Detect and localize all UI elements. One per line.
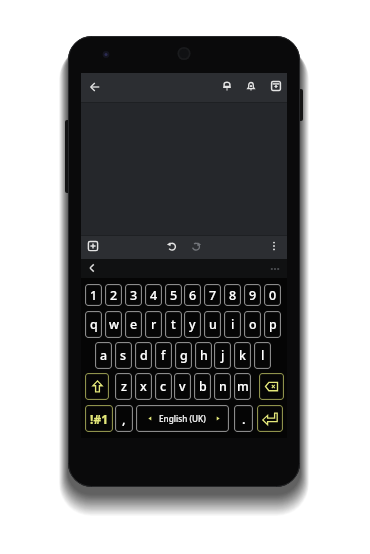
button[interactable]: p <box>264 311 281 338</box>
staticText: y <box>189 316 196 333</box>
button[interactable]: c <box>155 373 172 400</box>
staticText: 6 <box>189 287 197 304</box>
staticText: f <box>161 347 166 364</box>
staticText: k <box>239 347 246 364</box>
staticText: x <box>140 378 147 395</box>
staticText: v <box>179 378 186 395</box>
staticText: e <box>130 316 138 333</box>
button[interactable]: l <box>254 342 271 369</box>
button[interactable]: g <box>175 342 192 369</box>
staticText: n <box>219 378 227 395</box>
staticText: 7 <box>209 287 217 304</box>
staticText: 8 <box>229 287 237 304</box>
button[interactable]: f <box>155 342 172 369</box>
staticText: d <box>140 347 148 364</box>
staticText: j <box>221 347 225 364</box>
staticText: 3 <box>130 287 138 304</box>
button[interactable]: 1 <box>85 284 102 306</box>
staticText: 5 <box>170 287 178 304</box>
button[interactable]: 4 <box>145 284 162 306</box>
button[interactable]: o <box>244 311 261 338</box>
button[interactable]: Enter <box>257 405 283 432</box>
button[interactable]: s <box>115 342 132 369</box>
staticText: English (UK) <box>159 413 206 424</box>
staticText: q <box>90 316 98 333</box>
button[interactable]: Back <box>86 78 104 96</box>
staticText: s <box>120 347 127 364</box>
staticText: , <box>122 410 126 428</box>
button[interactable]: a <box>95 342 112 369</box>
button[interactable]: 8 <box>224 284 241 306</box>
button[interactable]: , <box>115 405 133 432</box>
staticText: 9 <box>249 287 257 304</box>
staticText: u <box>209 316 217 333</box>
button[interactable]: Shift <box>85 373 109 400</box>
staticText: 1 <box>90 287 98 304</box>
button[interactable]: k <box>234 342 251 369</box>
staticText: t <box>171 316 176 333</box>
staticText: p <box>269 316 277 333</box>
button[interactable]: More options <box>266 238 282 254</box>
button[interactable]: English (UK) <box>136 405 229 432</box>
button[interactable]: j <box>214 342 231 369</box>
button[interactable]: 7 <box>204 284 221 306</box>
staticText: !#1 <box>90 411 109 427</box>
button[interactable]: 3 <box>125 284 142 306</box>
button[interactable]: d <box>135 342 152 369</box>
staticText: h <box>200 347 208 364</box>
staticText: 2 <box>110 287 118 304</box>
button[interactable]: Add <box>85 238 101 254</box>
staticText: g <box>180 347 188 364</box>
staticText: l <box>261 347 265 364</box>
button[interactable]: Undo <box>164 238 180 254</box>
button[interactable]: Backspace <box>259 373 284 400</box>
staticText: a <box>100 347 108 364</box>
staticText: . <box>242 410 246 428</box>
button[interactable]: . <box>234 405 253 432</box>
button[interactable]: i <box>224 311 241 338</box>
button[interactable]: q <box>85 311 102 338</box>
button[interactable]: h <box>195 342 212 369</box>
staticText: z <box>121 378 127 395</box>
button[interactable]: Pin <box>219 78 235 94</box>
staticText: m <box>237 378 249 395</box>
staticText: 4 <box>150 287 158 304</box>
button[interactable]: Redo <box>188 238 204 254</box>
button[interactable]: Back <box>85 261 99 275</box>
button[interactable]: 2 <box>105 284 122 306</box>
button[interactable]: u <box>204 311 221 338</box>
button[interactable]: r <box>145 311 162 338</box>
staticText: c <box>160 378 167 395</box>
staticText: i <box>231 316 235 333</box>
staticText: 0 <box>269 287 277 304</box>
button[interactable]: e <box>125 311 142 338</box>
button[interactable]: 6 <box>184 284 201 306</box>
button[interactable]: z <box>115 373 132 400</box>
button[interactable]: !#1 <box>85 405 113 432</box>
staticText: w <box>109 316 119 333</box>
staticText: o <box>249 316 257 333</box>
button[interactable]: x <box>135 373 152 400</box>
button[interactable]: 0 <box>264 284 281 306</box>
button[interactable]: b <box>194 373 211 400</box>
button[interactable]: Reminder <box>243 78 259 94</box>
button[interactable]: m <box>234 373 251 400</box>
button[interactable]: t <box>165 311 182 338</box>
button[interactable]: y <box>184 311 201 338</box>
button[interactable]: Archive <box>268 78 284 94</box>
button[interactable]: v <box>174 373 191 400</box>
button[interactable]: w <box>105 311 122 338</box>
button[interactable]: Recents <box>268 262 282 276</box>
staticText: b <box>199 378 207 395</box>
button[interactable]: n <box>214 373 231 400</box>
button[interactable]: 5 <box>165 284 182 306</box>
staticText: r <box>151 316 157 333</box>
button[interactable]: 9 <box>244 284 261 306</box>
